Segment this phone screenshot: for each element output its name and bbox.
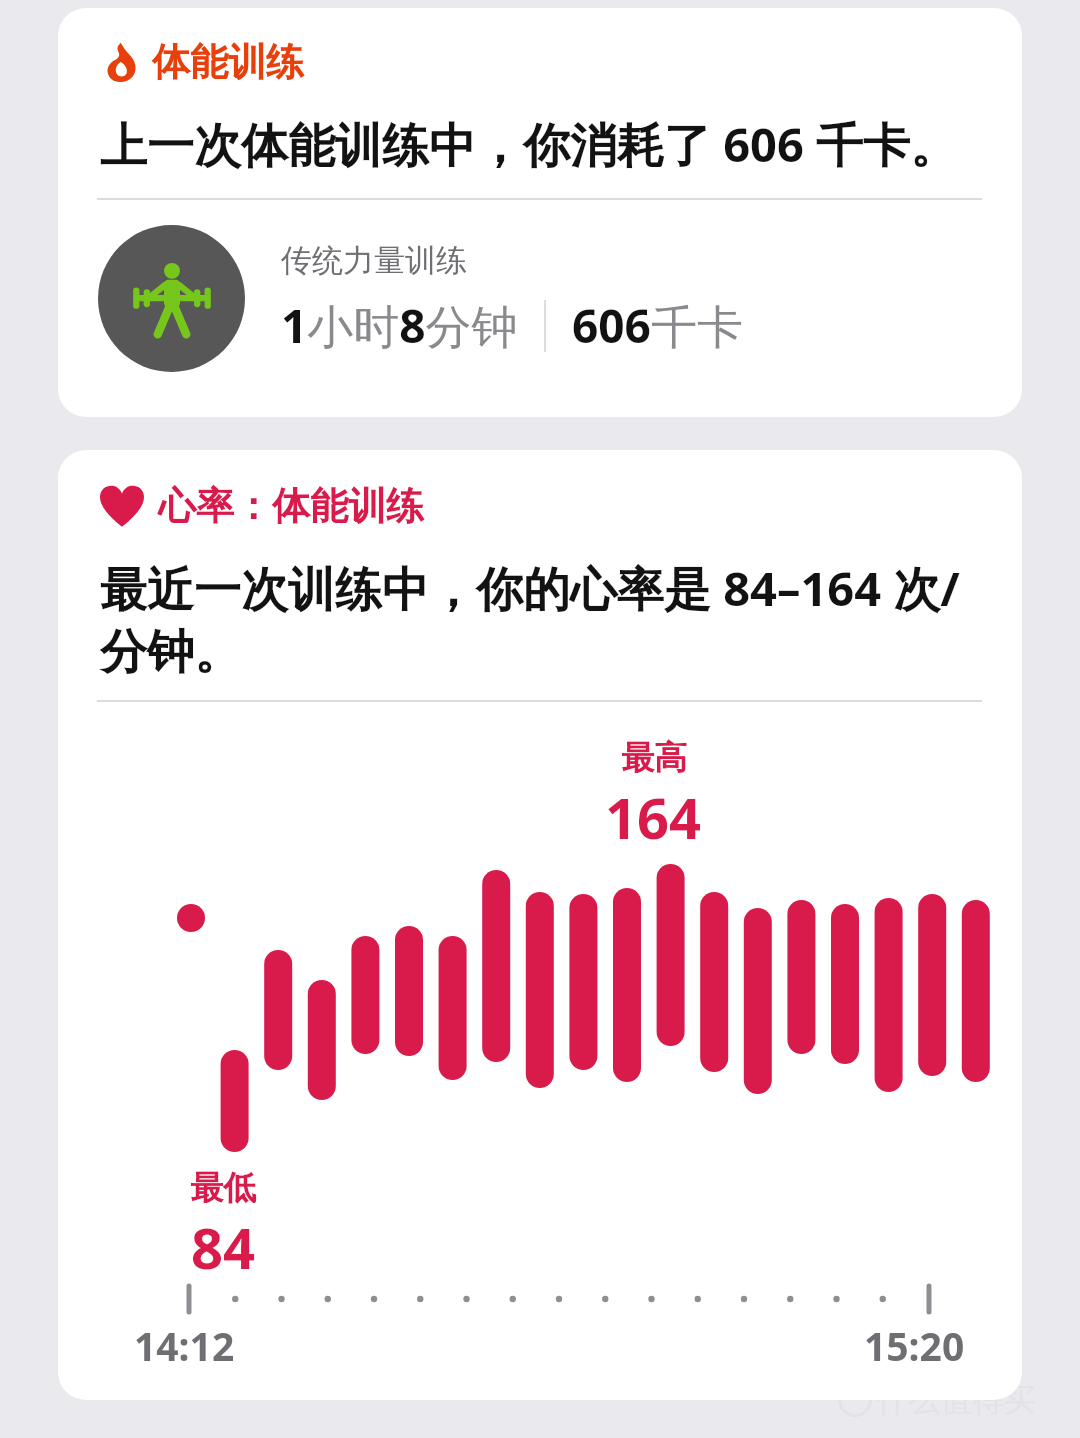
other: Traditional strength training — [130, 257, 214, 341]
button[interactable]: Heart rate — [58, 450, 1022, 1400]
staticText: 最近一次训练中，你的心率是 84–164 次/分钟。 — [100, 556, 980, 682]
other: Heart rate — [100, 484, 144, 528]
staticText: 1小时8分钟 — [281, 294, 518, 357]
staticText: 体能训练 — [152, 38, 304, 86]
staticText: 164 — [605, 779, 702, 855]
staticText: 最低 — [190, 1167, 256, 1209]
staticText: 传统力量训练 — [281, 241, 467, 280]
button[interactable]: Workout — [58, 8, 1022, 417]
other: Workout — [100, 42, 140, 82]
staticText: 上一次体能训练中，你消耗了 606 千卡。 — [100, 112, 958, 176]
staticText: 最高 — [621, 737, 687, 779]
staticText: 84 — [191, 1209, 256, 1285]
staticText: 心率：体能训练 — [158, 482, 424, 530]
staticText: 606千卡 — [572, 294, 743, 357]
staticText: 14:12 — [134, 1319, 235, 1372]
staticText: 什么值得买 — [876, 1380, 1036, 1420]
staticText: 15:20 — [864, 1319, 965, 1372]
